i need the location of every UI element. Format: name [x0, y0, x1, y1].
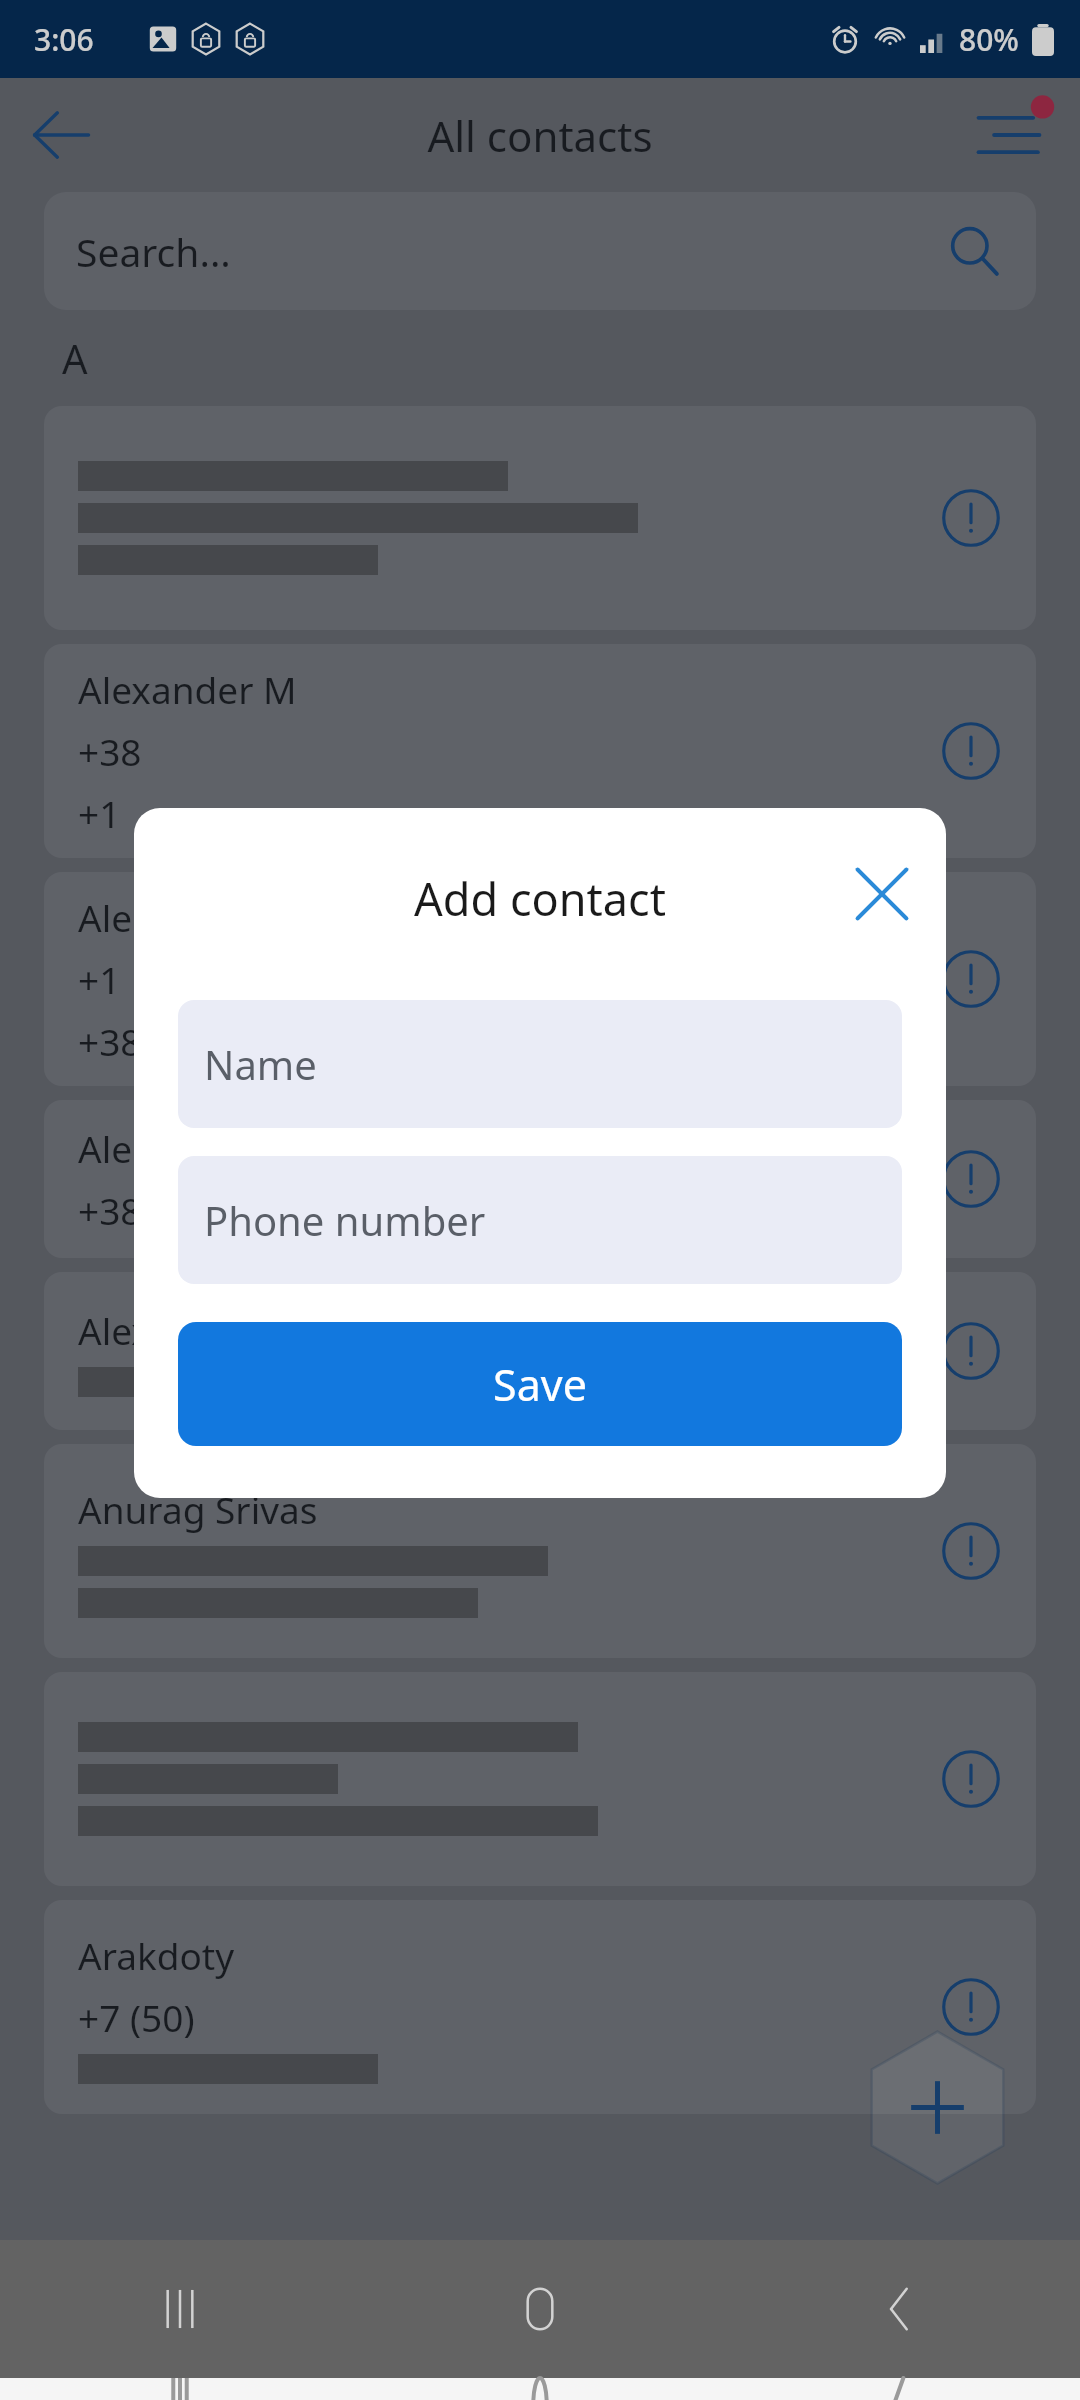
button[interactable]: Save: [178, 1322, 902, 1446]
staticText: Phone number: [204, 1193, 486, 1247]
button[interactable]: Recent apps: [124, 2253, 236, 2365]
button[interactable]: Arakdoty: [44, 1900, 1036, 2114]
button[interactable]: Back: [844, 2253, 956, 2365]
staticText: +38: [78, 1185, 142, 1235]
button[interactable]: Anurag Srivas: [44, 1444, 1036, 1658]
button[interactable]: [44, 1672, 1036, 1886]
button[interactable]: Ale: [44, 872, 1036, 1086]
staticText: +1: [78, 788, 121, 838]
staticText: +7 (50): [78, 1992, 195, 2042]
staticText: Search...: [76, 225, 231, 278]
button[interactable]: Back: [18, 92, 104, 178]
staticText: 80%: [959, 19, 1019, 60]
staticText: All contacts: [427, 107, 653, 164]
staticText: +38: [78, 726, 142, 776]
button[interactable]: Alexander M: [44, 644, 1036, 858]
staticText: Anurag Srivas: [78, 1484, 318, 1534]
staticText: Name: [204, 1037, 317, 1091]
staticText: +1: [78, 954, 121, 1004]
button[interactable]: Close: [838, 850, 926, 938]
button[interactable]: Home: [484, 2253, 596, 2365]
button[interactable]: Alexey Ralph: [44, 1272, 1036, 1430]
staticText: Add contact: [414, 868, 666, 929]
staticText: Save: [493, 1355, 587, 1414]
staticText: 3:06: [34, 19, 94, 60]
staticText: +38: [78, 1016, 142, 1066]
staticText: Ale: [78, 892, 133, 942]
button[interactable]: Ale: [44, 1100, 1036, 1258]
button[interactable]: Add contact: [860, 2030, 1015, 2185]
staticText: Arakdoty: [78, 1930, 235, 1980]
staticText: Ale: [78, 1123, 133, 1173]
button[interactable]: Search...: [44, 192, 1036, 310]
staticText: Alexander M: [78, 664, 297, 714]
staticText: Alexey Ralph: [78, 1305, 298, 1355]
button[interactable]: Filter: [966, 85, 1066, 185]
staticText: A: [62, 331, 88, 385]
button[interactable]: [44, 406, 1036, 630]
button[interactable]: Phone number: [178, 1156, 902, 1284]
button[interactable]: Name: [178, 1000, 902, 1128]
